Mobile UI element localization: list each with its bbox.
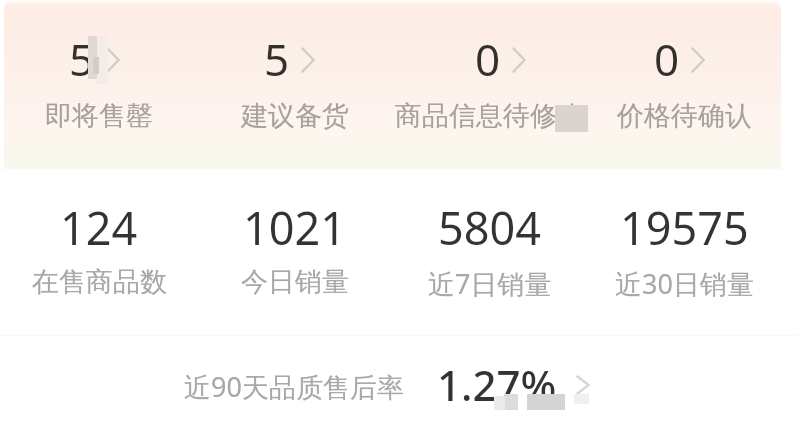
button[interactable]: 5 bbox=[1, 29, 197, 133]
staticText: 5 bbox=[69, 29, 95, 89]
button[interactable]: 1021 bbox=[197, 197, 392, 299]
staticText: 5804 bbox=[438, 197, 541, 258]
staticText: 在售商品数 bbox=[32, 265, 167, 299]
button[interactable]: 0 bbox=[392, 29, 587, 133]
staticText: 价格待确认 bbox=[617, 99, 752, 133]
button[interactable]: 近90天品质售后率 bbox=[0, 336, 797, 433]
staticText: 5 bbox=[264, 29, 290, 89]
button[interactable]: 124 bbox=[1, 197, 197, 299]
staticText: 近90天品质售后率 bbox=[184, 368, 404, 405]
staticText: 0 bbox=[654, 29, 680, 89]
staticText: 1.27% bbox=[437, 356, 557, 413]
staticText: 近7日销量 bbox=[428, 265, 552, 302]
staticText: 0 bbox=[475, 29, 501, 89]
staticText: 商品信息待修改 bbox=[395, 99, 584, 133]
staticText: 近30日销量 bbox=[615, 265, 754, 302]
staticText: 124 bbox=[60, 197, 138, 258]
button[interactable]: 19575 bbox=[587, 197, 782, 302]
staticText: 19575 bbox=[620, 197, 749, 258]
staticText: 1021 bbox=[243, 197, 346, 258]
staticText: 即将售罄 bbox=[45, 99, 153, 133]
staticText: 建议备货 bbox=[241, 99, 349, 133]
staticText: 今日销量 bbox=[241, 265, 349, 299]
button[interactable]: 5804 bbox=[392, 197, 587, 302]
button[interactable]: 5 bbox=[197, 29, 392, 133]
button[interactable]: 0 bbox=[587, 29, 782, 133]
